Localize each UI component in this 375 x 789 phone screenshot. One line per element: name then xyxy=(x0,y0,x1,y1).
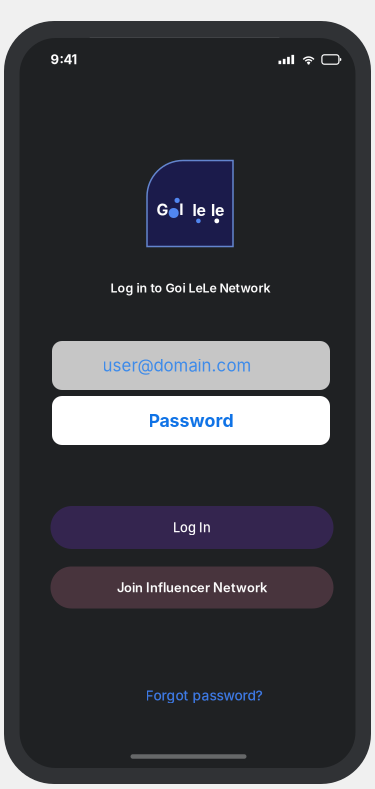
staticText: user@domain.com xyxy=(102,355,251,376)
button[interactable]: Password xyxy=(52,396,330,445)
button[interactable]: Forgot password? xyxy=(137,682,270,709)
staticText: G xyxy=(156,200,168,219)
staticText: 9:41 xyxy=(50,52,77,67)
staticText: le xyxy=(211,201,224,220)
button[interactable]: Log In xyxy=(50,506,333,549)
staticText: l xyxy=(179,200,183,219)
staticText: Password xyxy=(148,410,233,431)
staticText: Join Influencer Network xyxy=(117,580,267,595)
staticText: Log In xyxy=(173,520,211,535)
staticText: Log in to Goi LeLe Network xyxy=(110,280,270,295)
button[interactable]: user@domain.com xyxy=(52,341,330,390)
staticText: Forgot password? xyxy=(145,687,262,704)
staticText: le xyxy=(193,201,206,220)
button[interactable]: Join Influencer Network xyxy=(50,566,333,608)
